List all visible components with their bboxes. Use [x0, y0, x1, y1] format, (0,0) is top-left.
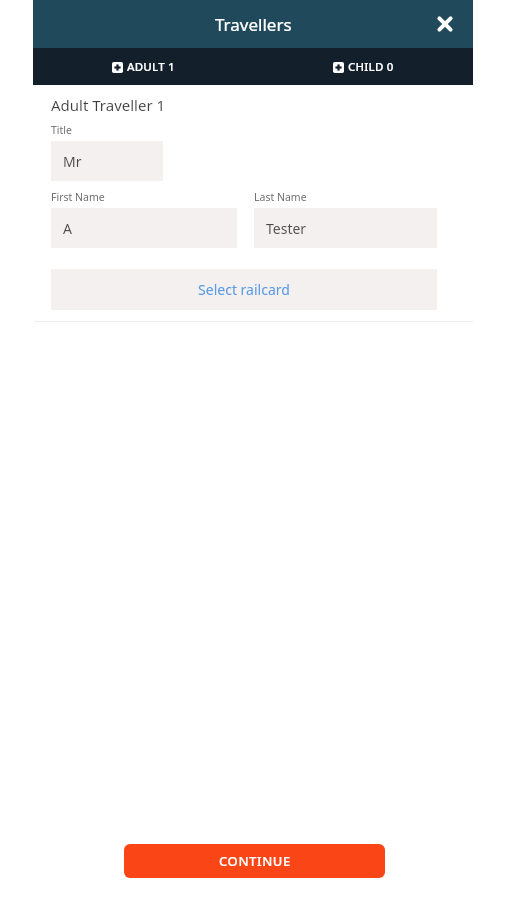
button[interactable]: Close [429, 8, 461, 40]
button[interactable]: Tester [254, 208, 437, 248]
button[interactable]: A [51, 208, 237, 248]
button[interactable]: CONTINUE [124, 844, 385, 878]
button[interactable]: ADULT 1 [33, 48, 253, 85]
button[interactable]: CHILD 0 [253, 48, 473, 85]
staticText: Title [51, 123, 72, 137]
staticText: Adult Traveller 1 [51, 95, 166, 115]
staticText: First Name [51, 190, 105, 204]
staticText: Tester [266, 219, 307, 238]
staticText: CHILD 0 [348, 59, 394, 75]
staticText: Mr [63, 152, 82, 171]
staticText: ADULT 1 [127, 59, 175, 75]
button[interactable]: Select railcard [51, 269, 437, 310]
staticText: Last Name [254, 190, 307, 204]
button[interactable]: Mr [51, 141, 163, 181]
staticText: CONTINUE [219, 852, 291, 870]
staticText: A [63, 219, 72, 238]
staticText: Select railcard [198, 280, 290, 299]
staticText: Travellers [215, 13, 292, 36]
